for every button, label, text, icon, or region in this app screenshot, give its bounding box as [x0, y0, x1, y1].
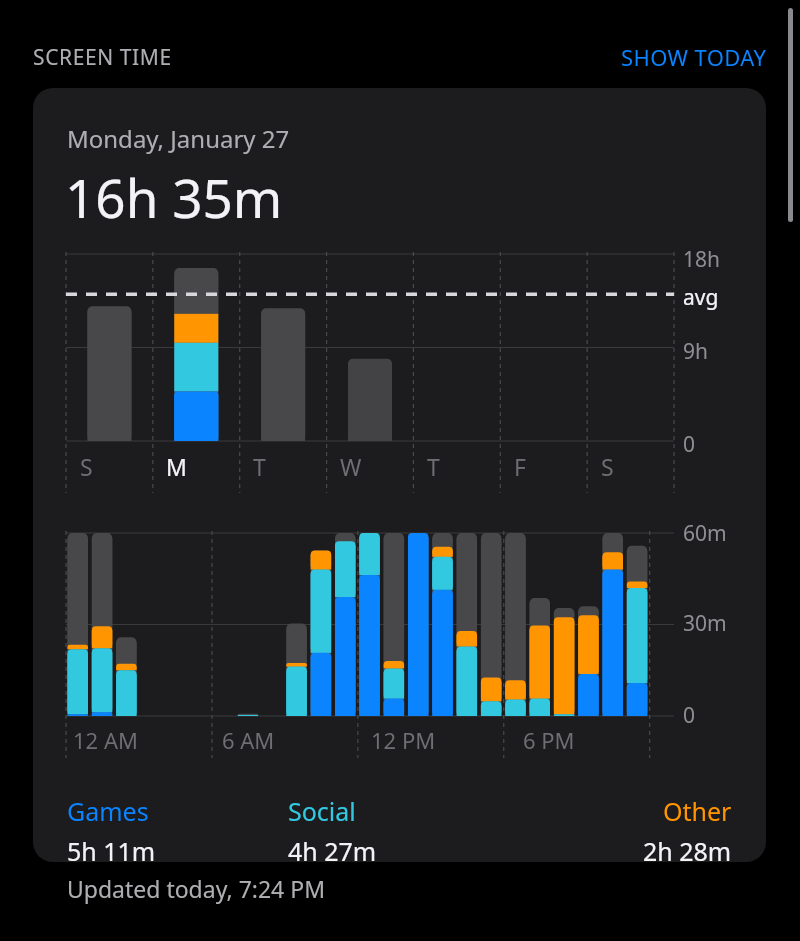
- staticText: Monday, January 27: [67, 122, 290, 155]
- staticText: 9h: [683, 337, 708, 366]
- button[interactable]: F: [500, 451, 587, 482]
- button[interactable]: W: [326, 451, 413, 482]
- button[interactable]: Monday, January 27: [33, 88, 766, 862]
- staticText: SCREEN TIME: [33, 43, 172, 72]
- staticText: S: [80, 451, 93, 482]
- button[interactable]: T: [413, 451, 500, 482]
- staticText: M: [166, 451, 187, 482]
- staticText: F: [514, 451, 526, 482]
- staticText: T: [253, 451, 266, 482]
- button[interactable]: T: [239, 451, 326, 482]
- button[interactable]: Social: [288, 794, 510, 862]
- staticText: 5h 11m: [67, 834, 156, 862]
- staticText: avg: [683, 283, 719, 312]
- button[interactable]: Games: [67, 794, 288, 862]
- staticText: 6 PM: [523, 725, 575, 755]
- button[interactable]: S: [66, 451, 152, 482]
- staticText: 2h 28m: [643, 834, 732, 862]
- staticText: 12 AM: [73, 725, 138, 755]
- button[interactable]: S: [587, 451, 674, 482]
- button[interactable]: SHOW TODAY: [621, 42, 767, 72]
- button[interactable]: Other: [510, 794, 732, 862]
- staticText: S: [601, 451, 614, 482]
- staticText: 16h 35m: [65, 161, 283, 233]
- staticText: Games: [67, 794, 149, 828]
- staticText: 4h 27m: [288, 834, 377, 862]
- staticText: W: [340, 451, 362, 482]
- staticText: 18h: [683, 245, 721, 274]
- staticText: T: [427, 451, 440, 482]
- staticText: 0: [683, 701, 696, 730]
- staticText: 12 PM: [371, 725, 436, 755]
- staticText: Updated today, 7:24 PM: [67, 873, 326, 904]
- staticText: Social: [288, 794, 356, 828]
- staticText: 60m: [683, 519, 727, 548]
- staticText: 30m: [683, 609, 727, 638]
- staticText: 0: [683, 430, 696, 459]
- staticText: Other: [663, 794, 732, 828]
- staticText: 6 AM: [222, 725, 275, 755]
- staticText: SHOW TODAY: [621, 42, 767, 72]
- button[interactable]: M: [152, 451, 239, 482]
